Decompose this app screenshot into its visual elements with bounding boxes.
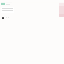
button[interactable]	[1, 7, 14, 13]
button[interactable]: Primary action	[2, 17, 4, 19]
button[interactable]	[0, 1, 15, 5]
button[interactable]: Featured panel	[59, 1, 64, 17]
